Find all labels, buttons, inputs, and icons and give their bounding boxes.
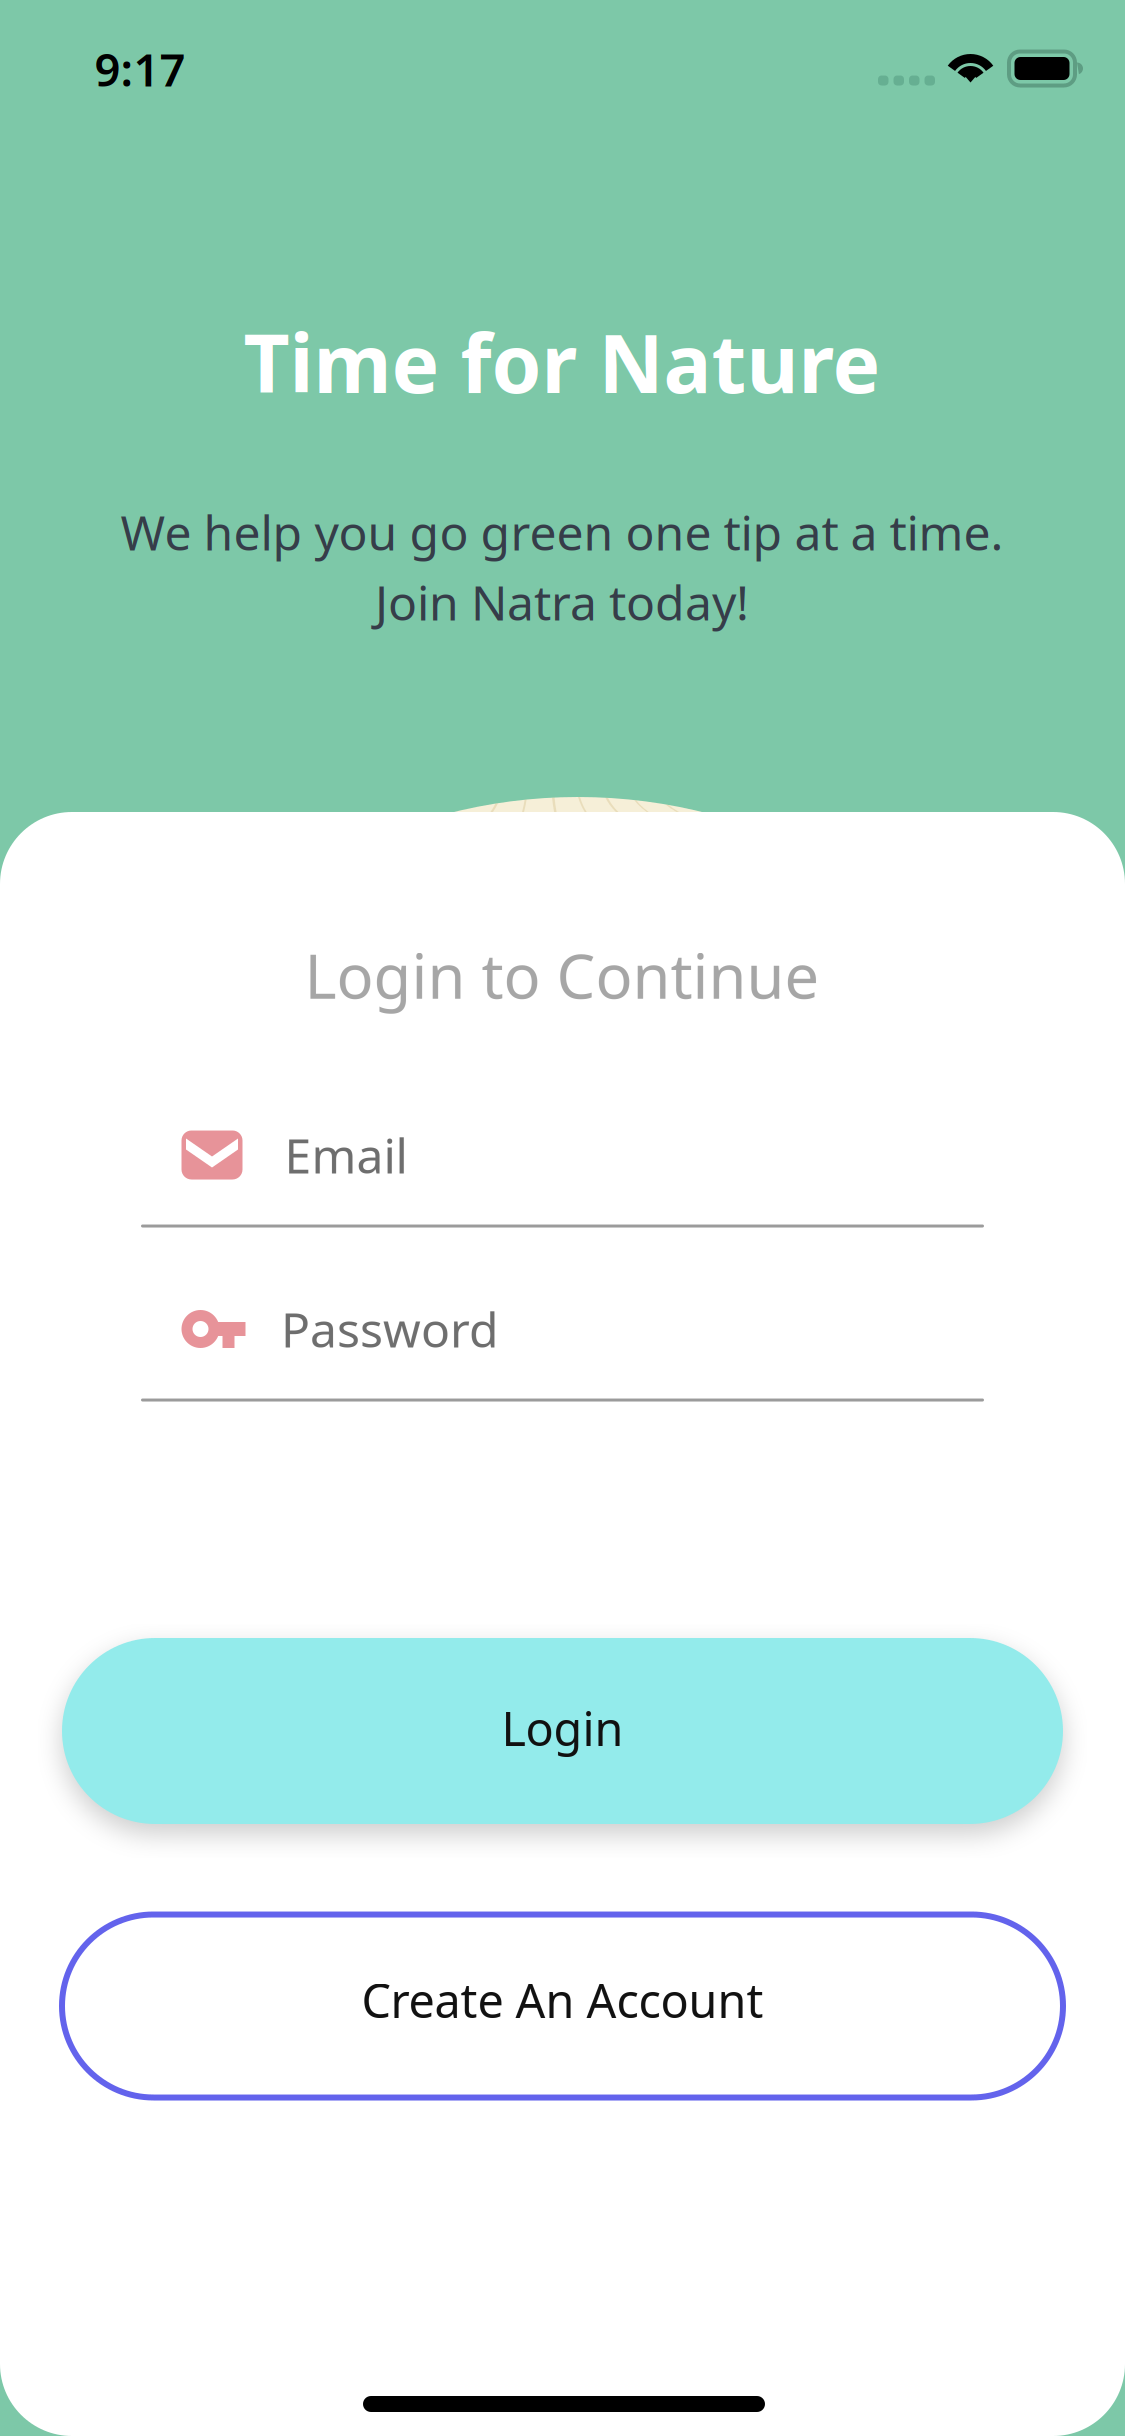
staticText: 9:17 — [94, 39, 185, 99]
staticText: Login to Continue — [304, 934, 819, 1016]
staticText: Password — [281, 1297, 499, 1361]
staticText: We help you go green one tip at a time. — [120, 500, 1003, 564]
button[interactable]: Login — [62, 1638, 1063, 1824]
staticText: Time for Nature — [243, 309, 880, 415]
staticText: Login — [501, 1697, 623, 1759]
button[interactable]: Password — [141, 1300, 984, 1400]
staticText: Email — [284, 1123, 407, 1187]
staticText: Create An Account — [361, 1969, 763, 2031]
staticText: Join Natra today! — [375, 570, 749, 634]
button[interactable]: Create An Account — [62, 1914, 1063, 2097]
button[interactable]: Email — [141, 1126, 984, 1226]
